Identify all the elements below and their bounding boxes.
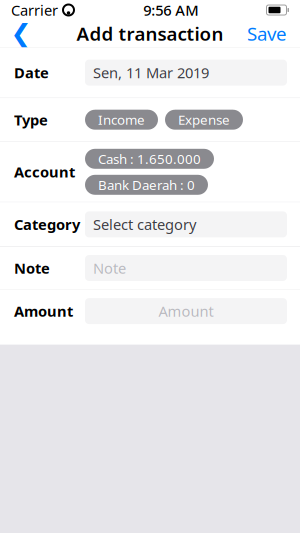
staticText: Save	[247, 21, 287, 46]
staticText: Amount	[14, 301, 73, 321]
staticText: ❮	[10, 19, 31, 48]
staticText: Category	[14, 215, 80, 234]
staticText: Note	[93, 258, 126, 278]
staticText: Amount	[158, 301, 213, 321]
staticText: Bank Daerah : 0	[98, 176, 195, 194]
button[interactable]: Cash : 1.650.000	[85, 149, 214, 169]
button[interactable]: Save	[237, 20, 297, 47]
staticText: Note	[14, 258, 50, 278]
button[interactable]: Expense	[165, 110, 243, 130]
staticText: Type	[14, 110, 48, 129]
staticText: Add transaction	[76, 21, 223, 46]
button[interactable]: Note	[85, 255, 287, 281]
staticText: Income	[98, 111, 145, 128]
staticText: Carrier	[11, 0, 58, 20]
button[interactable]: Select category	[85, 211, 287, 237]
staticText: Expense	[178, 111, 230, 128]
button[interactable]: Back	[3, 20, 39, 47]
staticText: Select category	[93, 215, 196, 234]
button[interactable]: Income	[85, 110, 158, 130]
staticText: 9:56 AM	[143, 0, 198, 20]
staticText: Sen, 11 Mar 2019	[93, 63, 209, 82]
staticText: Cash : 1.650.000	[98, 150, 201, 168]
button[interactable]: Sen, 11 Mar 2019	[85, 60, 287, 86]
button[interactable]: Bank Daerah : 0	[85, 175, 208, 195]
staticText: Account	[14, 162, 75, 182]
button[interactable]: Amount	[85, 298, 287, 324]
staticText: Date	[14, 63, 49, 82]
